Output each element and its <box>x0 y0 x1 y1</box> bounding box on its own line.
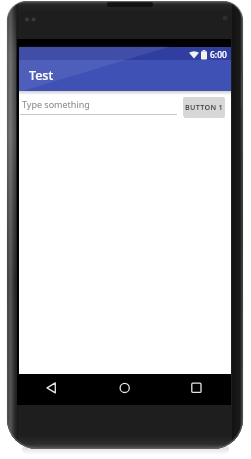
button[interactable] <box>185 377 207 399</box>
button[interactable]: BUTTON 1 <box>183 97 225 117</box>
button[interactable]: Type something <box>19 93 178 117</box>
button[interactable] <box>40 377 62 399</box>
button[interactable] <box>114 377 136 399</box>
staticText: Test <box>29 67 54 84</box>
staticText: 6:00 <box>210 49 227 61</box>
staticText: BUTTON 1 <box>185 102 224 112</box>
staticText: Type something <box>22 98 90 110</box>
